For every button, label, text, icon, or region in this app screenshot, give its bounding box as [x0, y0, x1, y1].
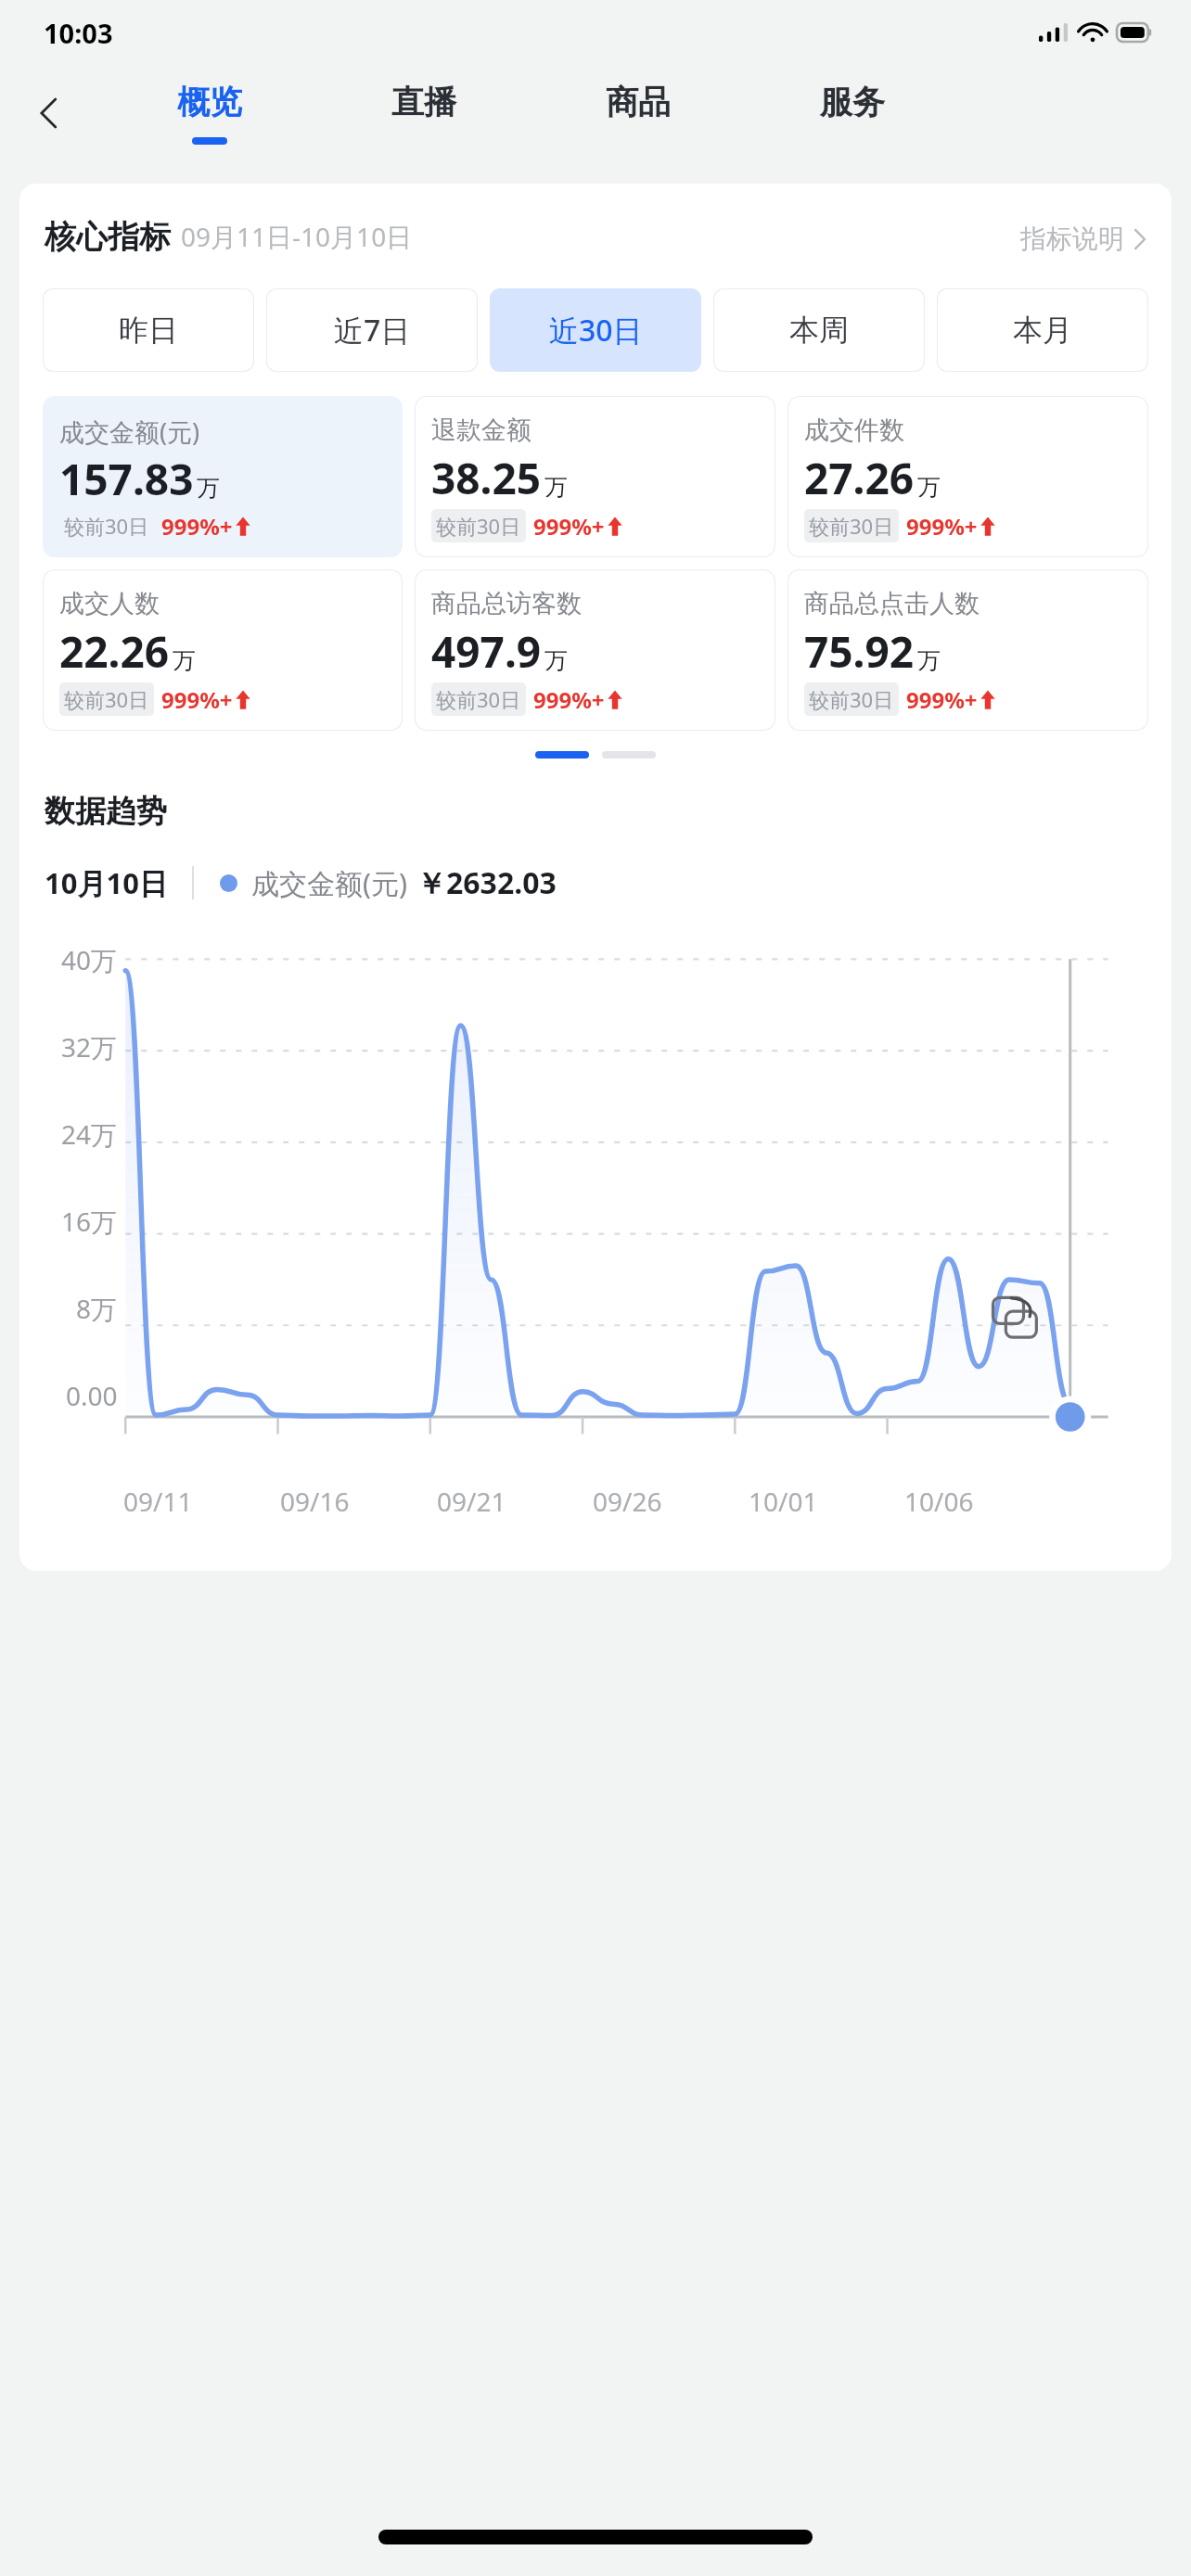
staticText: 直播: [391, 82, 456, 122]
staticText: 商品总点击人数: [804, 588, 980, 619]
staticText: 较前30日: [64, 685, 149, 713]
staticText: 0.00: [66, 1378, 118, 1413]
staticText: 成交金额(元): [251, 864, 407, 902]
button[interactable]: 退款金额: [415, 396, 775, 557]
staticText: 较前30日: [436, 512, 521, 540]
button[interactable]: 概览: [102, 59, 316, 167]
button[interactable]: 指标说明: [1020, 223, 1146, 257]
button[interactable]: 服务: [745, 59, 959, 167]
staticText: 较前30日: [436, 685, 521, 713]
button[interactable]: 商品: [531, 59, 745, 167]
staticText: 数据趋势: [45, 792, 167, 831]
staticText: 40万: [61, 942, 118, 977]
staticText: 16万: [61, 1204, 118, 1239]
button[interactable]: 直播: [316, 59, 531, 167]
staticText: 09/21: [437, 1484, 506, 1519]
button[interactable]: 成交金额(元): [43, 396, 403, 557]
staticText: 09月11日-10月10日: [181, 219, 413, 254]
staticText: 成交人数: [59, 588, 160, 619]
staticText: 999%+: [906, 511, 978, 542]
button[interactable]: 近7日: [266, 288, 478, 372]
staticText: 商品: [606, 82, 671, 122]
staticText: 999%+: [161, 511, 233, 542]
staticText: 本月: [1013, 312, 1072, 349]
staticText: 497.9: [431, 622, 542, 681]
button[interactable]: Back: [15, 79, 83, 147]
staticText: 10:03: [44, 15, 113, 51]
staticText: 本周: [789, 312, 849, 349]
staticText: 75.92: [804, 622, 915, 681]
staticText: 较前30日: [809, 685, 894, 713]
staticText: 999%+: [533, 511, 605, 542]
button[interactable]: 昨日: [43, 288, 254, 372]
staticText: 万: [544, 473, 568, 502]
staticText: 8万: [76, 1291, 118, 1326]
staticText: 万: [173, 646, 196, 675]
staticText: 近30日: [549, 310, 643, 351]
staticText: 999%+: [906, 684, 978, 715]
staticText: 较前30日: [64, 512, 149, 540]
staticText: 09/26: [593, 1484, 662, 1519]
staticText: 退款金额: [431, 414, 531, 446]
staticText: 概览: [177, 82, 242, 122]
staticText: 22.26: [59, 622, 170, 681]
staticText: 万: [544, 646, 568, 675]
staticText: 万: [917, 646, 941, 675]
staticText: 38.25: [431, 449, 542, 507]
staticText: 昨日: [119, 312, 178, 349]
staticText: 核心指标: [45, 217, 171, 257]
staticText: 指标说明: [1020, 223, 1124, 255]
staticText: 较前30日: [809, 512, 894, 540]
staticText: 27.26: [804, 449, 915, 507]
staticText: 成交件数: [804, 414, 904, 446]
button[interactable]: 本月: [937, 288, 1148, 372]
staticText: 24万: [61, 1116, 118, 1152]
staticText: 商品总访客数: [431, 588, 582, 619]
staticText: ￥2632.03: [416, 862, 557, 903]
staticText: 10/06: [904, 1484, 974, 1519]
button[interactable]: 成交人数: [43, 569, 403, 731]
button[interactable]: 商品总访客数: [415, 569, 775, 731]
staticText: 999%+: [161, 684, 233, 715]
staticText: 09/11: [123, 1484, 193, 1519]
staticText: 近7日: [334, 310, 411, 351]
button[interactable]: 成交件数: [788, 396, 1148, 557]
button[interactable]: 近30日: [490, 288, 701, 372]
staticText: 万: [197, 474, 220, 503]
staticText: 10月10日: [45, 863, 168, 902]
staticText: 10/01: [749, 1484, 818, 1519]
staticText: 服务: [820, 82, 885, 122]
staticText: 09/16: [280, 1484, 350, 1519]
button[interactable]: 商品总点击人数: [788, 569, 1148, 731]
staticText: 32万: [61, 1029, 118, 1065]
staticText: 999%+: [533, 684, 605, 715]
staticText: 成交金额(元): [59, 414, 200, 449]
staticText: 万: [917, 473, 941, 502]
button[interactable]: 本周: [713, 288, 925, 372]
staticText: 157.83: [59, 450, 194, 508]
